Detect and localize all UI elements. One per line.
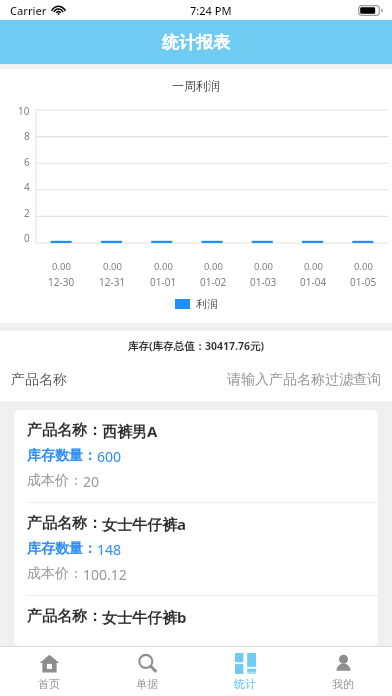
staticText: 成本价： xyxy=(27,472,83,490)
staticText: 产品名称： xyxy=(27,607,102,626)
staticText: 0.00 xyxy=(103,260,122,273)
staticText: 600 xyxy=(97,447,122,466)
staticText: 8 xyxy=(24,129,30,141)
staticText: 库存数量： xyxy=(27,447,97,465)
staticText: Carrier xyxy=(10,3,47,18)
button[interactable]: 产品名称： xyxy=(14,410,378,502)
button[interactable]: 首页 xyxy=(0,647,98,696)
staticText: 利润 xyxy=(196,297,218,311)
button[interactable]: 单据 xyxy=(98,647,196,696)
staticText: 女士牛仔裤a xyxy=(102,514,186,534)
button[interactable]: 产品名称： xyxy=(14,503,378,595)
staticText: 请输入产品名称过滤查询 xyxy=(227,371,381,389)
staticText: 库存(库存总值：30417.76元) xyxy=(0,339,392,353)
staticText: 产品名称 xyxy=(11,371,67,389)
staticText: 单据 xyxy=(136,677,158,691)
staticText: 01-04 xyxy=(300,275,327,289)
staticText: 6 xyxy=(24,155,30,167)
staticText: 我的 xyxy=(332,677,354,691)
staticText: 女士牛仔裤b xyxy=(102,607,187,627)
staticText: 20 xyxy=(83,472,100,491)
staticText: 一周利润 xyxy=(0,78,392,93)
button[interactable]: 产品名称 xyxy=(0,363,392,397)
staticText: 0 xyxy=(24,231,30,243)
staticText: 0.00 xyxy=(354,260,373,273)
staticText: 0.00 xyxy=(52,260,71,273)
button[interactable]: 统计 xyxy=(196,647,294,696)
staticText: 产品名称： xyxy=(27,514,102,533)
staticText: 0.00 xyxy=(154,260,173,273)
staticText: 0.00 xyxy=(204,260,223,273)
staticText: 成本价： xyxy=(27,565,83,583)
staticText: 2 xyxy=(24,206,30,218)
staticText: 产品名称： xyxy=(27,421,102,440)
staticText: 100.12 xyxy=(83,565,127,584)
staticText: 4 xyxy=(24,180,30,192)
staticText: 10 xyxy=(18,104,30,116)
staticText: 西裤男A xyxy=(102,421,158,441)
staticText: 统计报表 xyxy=(162,32,230,53)
staticText: 0.00 xyxy=(254,260,273,273)
button[interactable]: 我的 xyxy=(294,647,392,696)
staticText: 01-02 xyxy=(200,275,227,289)
staticText: 首页 xyxy=(38,677,60,691)
staticText: 148 xyxy=(97,540,122,559)
staticText: 12-30 xyxy=(48,275,75,289)
staticText: 12-31 xyxy=(99,275,126,289)
staticText: 01-03 xyxy=(250,275,277,289)
staticText: 0.00 xyxy=(304,260,323,273)
staticText: 01-05 xyxy=(350,275,377,289)
button[interactable]: 产品名称： xyxy=(14,596,378,638)
staticText: 库存数量： xyxy=(27,540,97,558)
staticText: 01-01 xyxy=(150,275,177,289)
staticText: 统计 xyxy=(234,677,256,691)
staticText: 7:24 PM xyxy=(190,3,232,18)
